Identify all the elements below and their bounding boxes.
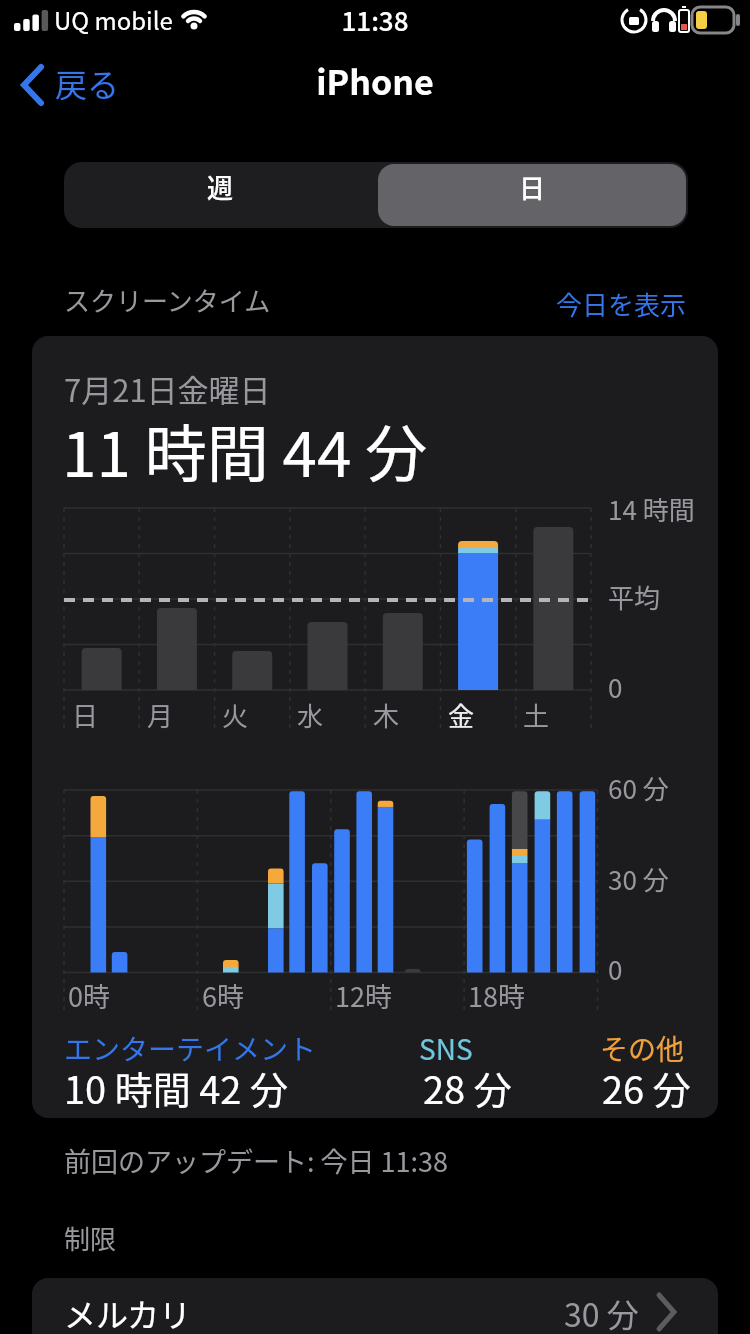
staticText: エンターテイメント: [64, 1028, 317, 1069]
button[interactable]: [64, 162, 376, 228]
staticText: 14 時間: [608, 490, 695, 528]
staticText: 30 分: [564, 1290, 639, 1334]
staticText: 26 分: [602, 1060, 691, 1115]
staticText: 金: [448, 696, 475, 734]
staticText: スクリーンタイム: [64, 281, 271, 319]
staticText: 火: [222, 696, 249, 734]
staticText: その他: [600, 1028, 685, 1069]
staticText: 日: [72, 696, 99, 734]
staticText: 0時: [68, 976, 110, 1015]
staticText: 前回のアップデート: 今日 11:38: [64, 1141, 449, 1180]
staticText: 11 時間 44 分: [62, 405, 428, 495]
staticText: 6時: [202, 976, 244, 1015]
staticText: 木: [373, 696, 400, 734]
staticText: 7月21日金曜日: [64, 366, 271, 411]
staticText: 戻る: [55, 60, 120, 106]
button[interactable]: [32, 1278, 718, 1334]
button[interactable]: [378, 164, 686, 226]
staticText: 今日を表示: [548, 285, 686, 323]
staticText: 月: [147, 696, 174, 734]
staticText: 平均: [608, 578, 661, 616]
staticText: 11:38: [330, 1, 420, 39]
staticText: 制限: [64, 1219, 117, 1257]
staticText: 週: [64, 168, 376, 206]
staticText: UQ mobile: [54, 2, 173, 37]
staticText: 28 分: [423, 1060, 512, 1115]
staticText: 10 時間 42 分: [64, 1060, 288, 1115]
staticText: iPhone: [280, 56, 470, 105]
staticText: SNS: [419, 1028, 473, 1069]
button[interactable]: [14, 58, 134, 112]
staticText: 18時: [468, 976, 525, 1015]
staticText: 30 分: [608, 860, 669, 898]
staticText: 0: [608, 668, 623, 706]
staticText: 土: [523, 696, 550, 734]
staticText: 60 分: [608, 769, 669, 807]
staticText: 水: [297, 696, 324, 734]
staticText: 日: [378, 168, 686, 206]
staticText: メルカリ: [64, 1290, 192, 1334]
button[interactable]: 今日を表示: [548, 280, 690, 322]
staticText: 0: [608, 950, 623, 988]
staticText: 12時: [335, 976, 392, 1015]
